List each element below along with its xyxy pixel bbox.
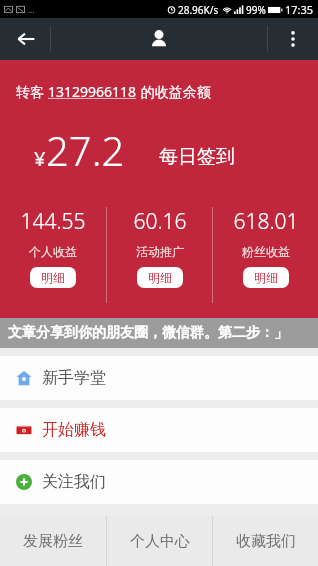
- button[interactable]: 收藏我们: [213, 516, 318, 566]
- staticText: 粉丝收益: [242, 244, 290, 259]
- button[interactable]: 个人中心: [107, 516, 212, 566]
- staticText: 活动推广: [136, 244, 184, 259]
- button[interactable]: 发展粉丝: [0, 516, 106, 566]
- staticText: 收藏我们: [236, 532, 296, 551]
- staticText: 转客: [16, 82, 48, 101]
- staticText: 99%: [246, 3, 266, 17]
- staticText: 27.2: [46, 123, 125, 177]
- staticText: 的收益余额: [137, 82, 211, 101]
- staticText: 144.55: [20, 207, 86, 236]
- staticText: 13129966118: [48, 82, 137, 101]
- button[interactable]: 每日签到: [155, 141, 239, 173]
- button[interactable]: More options: [268, 18, 318, 60]
- staticText: 28.96K/s: [178, 3, 219, 17]
- button[interactable]: 关注我们: [0, 460, 318, 504]
- button[interactable]: 开始赚钱: [0, 408, 318, 452]
- button[interactable]: Back: [0, 18, 52, 60]
- button[interactable]: Profile: [119, 18, 199, 60]
- staticText: 个人中心: [130, 532, 190, 551]
- staticText: 开始赚钱: [42, 420, 106, 440]
- button[interactable]: 文章分享到你的朋友圈，微信群。第二步：」: [0, 318, 318, 348]
- staticText: ¥: [34, 145, 46, 172]
- staticText: 60.16: [133, 207, 187, 236]
- staticText: 关注我们: [42, 472, 106, 492]
- staticText: 明细: [254, 270, 278, 285]
- staticText: 新手学堂: [42, 368, 106, 388]
- staticText: 618.01: [233, 207, 299, 236]
- staticText: 17:35: [285, 2, 314, 17]
- button[interactable]: 新手学堂: [0, 356, 318, 400]
- button[interactable]: 明细: [243, 267, 289, 288]
- staticText: …: [28, 4, 35, 15]
- staticText: 明细: [41, 270, 65, 285]
- button[interactable]: 明细: [137, 267, 183, 288]
- staticText: 个人收益: [29, 244, 77, 259]
- staticText: 发展粉丝: [23, 532, 83, 551]
- staticText: 每日签到: [159, 145, 235, 169]
- staticText: 明细: [148, 270, 172, 285]
- button[interactable]: 明细: [30, 267, 76, 288]
- staticText: 文章分享到你的朋友圈，微信群。第二步：」: [8, 324, 288, 342]
